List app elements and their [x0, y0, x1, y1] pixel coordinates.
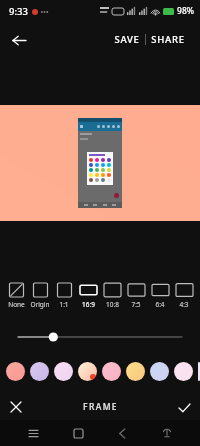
- button[interactable]: Home: [66, 421, 90, 445]
- button[interactable]: 4:3: [172, 281, 196, 311]
- staticText: 16:9: [82, 300, 95, 309]
- button[interactable]: Gradient 4: [102, 362, 121, 381]
- button[interactable]: Gradient 7: [174, 362, 193, 381]
- button[interactable]: FRAME: [79, 397, 122, 417]
- button[interactable]: SHARE: [146, 29, 190, 50]
- staticText: FRAME: [83, 401, 118, 413]
- button[interactable]: 10:8: [100, 281, 124, 311]
- button[interactable]: Gradient 8: [198, 362, 200, 381]
- staticText: Origin: [30, 300, 50, 309]
- staticText: 10:8: [106, 300, 119, 309]
- button[interactable]: Gradient 3: [78, 362, 97, 381]
- staticText: 6:4: [155, 300, 165, 309]
- button[interactable]: Back: [4, 25, 34, 55]
- button[interactable]: [0, 328, 200, 346]
- button[interactable]: Cancel: [5, 396, 27, 418]
- staticText: 4:3: [179, 300, 189, 309]
- button[interactable]: Gradient 6: [150, 362, 169, 381]
- button[interactable]: SAVE: [109, 29, 145, 50]
- button[interactable]: 1:1: [52, 281, 76, 311]
- button[interactable]: Gradient 1: [30, 362, 49, 381]
- button[interactable]: Gradient 0: [6, 362, 25, 381]
- staticText: None: [8, 300, 25, 309]
- staticText: SHARE: [151, 33, 185, 46]
- staticText: 1:1: [59, 300, 69, 309]
- button[interactable]: Screenshot: [155, 421, 179, 445]
- button[interactable]: Apply: [173, 396, 195, 418]
- button[interactable]: Recents: [21, 421, 45, 445]
- button[interactable]: Gradient 5: [126, 362, 145, 381]
- staticText: 9:33: [9, 5, 28, 18]
- button[interactable]: 16:9: [76, 281, 100, 311]
- button[interactable]: Back: [110, 421, 134, 445]
- button[interactable]: Gradient 2: [54, 362, 73, 381]
- button[interactable]: 6:4: [148, 281, 172, 311]
- staticText: SAVE: [114, 33, 140, 46]
- button[interactable]: None: [4, 281, 28, 311]
- button[interactable]: 7:5: [124, 281, 148, 311]
- staticText: 7:5: [131, 300, 141, 309]
- staticText: 98%: [177, 5, 194, 17]
- button[interactable]: Origin: [28, 281, 52, 311]
